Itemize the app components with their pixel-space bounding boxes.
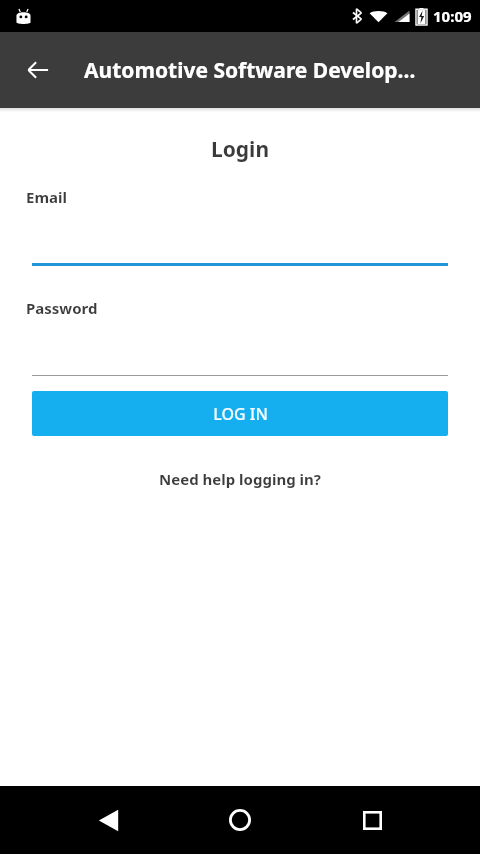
staticText: Login xyxy=(0,135,480,164)
button[interactable] xyxy=(32,350,448,376)
staticText: Password xyxy=(26,298,98,318)
button[interactable]: Home xyxy=(216,796,264,844)
button[interactable]: Need help logging in? xyxy=(0,469,480,489)
button[interactable]: Recent apps xyxy=(348,796,396,844)
staticText: Need help logging in? xyxy=(159,469,321,489)
button[interactable] xyxy=(32,240,448,266)
staticText: Email xyxy=(26,187,67,207)
button[interactable]: Navigate up xyxy=(14,46,62,94)
staticText: Automotive Software Develop… xyxy=(84,56,416,85)
button[interactable]: LOG IN xyxy=(32,391,448,436)
button[interactable]: Back xyxy=(84,796,132,844)
staticText: 10:09 xyxy=(433,6,472,26)
staticText: LOG IN xyxy=(213,403,268,425)
